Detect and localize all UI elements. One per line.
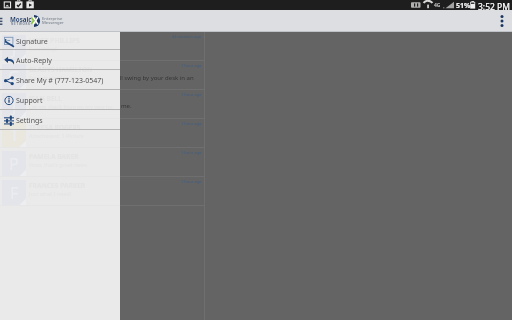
- staticText: TERESA ROGERS: [29, 123, 81, 132]
- staticText: 44 minutes ago: [172, 34, 202, 39]
- staticText: 1 hour ago: [181, 121, 202, 126]
- staticText: 4G: [434, 2, 441, 9]
- button[interactable]: Share My # (777-123-0547): [0, 70, 120, 90]
- staticText: 1 hour ago: [181, 150, 202, 155]
- staticText: Support: [16, 96, 43, 106]
- button[interactable]: 1 hour ago: [0, 90, 205, 119]
- staticText: GLADYS HAMILTON: [29, 65, 93, 74]
- staticText: Auto-Reply: [16, 56, 52, 66]
- button[interactable]: 1 hour ago: [0, 177, 205, 206]
- staticText: Sure thing!: [29, 45, 57, 52]
- button[interactable]: Support: [0, 90, 120, 110]
- button[interactable]: More options: [490, 10, 512, 32]
- staticText: T: [10, 124, 19, 146]
- button[interactable]: Settings: [0, 110, 120, 130]
- staticText: 51%: [456, 1, 471, 11]
- staticText: 1 hour ago: [181, 92, 202, 97]
- button[interactable]: 1 hour ago: [0, 119, 205, 148]
- button[interactable]: Open navigation drawer: [0, 10, 3, 32]
- staticText: Messenger: [42, 20, 64, 26]
- staticText: N E T W O R K: [11, 22, 31, 26]
- staticText: Share My # (777-123-0547): [16, 76, 104, 86]
- button[interactable]: Auto-Reply: [0, 50, 120, 70]
- staticText: J: [12, 95, 17, 117]
- button[interactable]: 1 hour ago: [0, 148, 205, 177]
- staticText: 3:52 PM: [478, 1, 510, 11]
- staticText: Enterprise: [42, 16, 63, 22]
- staticText: JANET PHILLIPS: [29, 36, 80, 45]
- staticText: and I'll swing by your desk in an: [104, 74, 194, 82]
- staticText: 1 hour ago: [181, 179, 202, 184]
- button[interactable]: Signature: [0, 32, 120, 50]
- staticText: me.: [121, 102, 132, 110]
- staticText: Signature: [16, 37, 48, 47]
- staticText: Let me check from on my way ho: [29, 103, 113, 110]
- staticText: G: [8, 66, 20, 88]
- button[interactable]: 1 hour ago: [0, 61, 205, 90]
- staticText: J: [12, 37, 17, 59]
- staticText: Mosaic: [10, 15, 32, 23]
- staticText: Sounds good to me: [29, 74, 79, 81]
- staticText: 1 hour ago: [181, 63, 202, 68]
- button[interactable]: 44 minutes ago: [0, 32, 205, 61]
- staticText: Settings: [16, 116, 43, 126]
- staticText: JEAN BELL: [29, 94, 62, 103]
